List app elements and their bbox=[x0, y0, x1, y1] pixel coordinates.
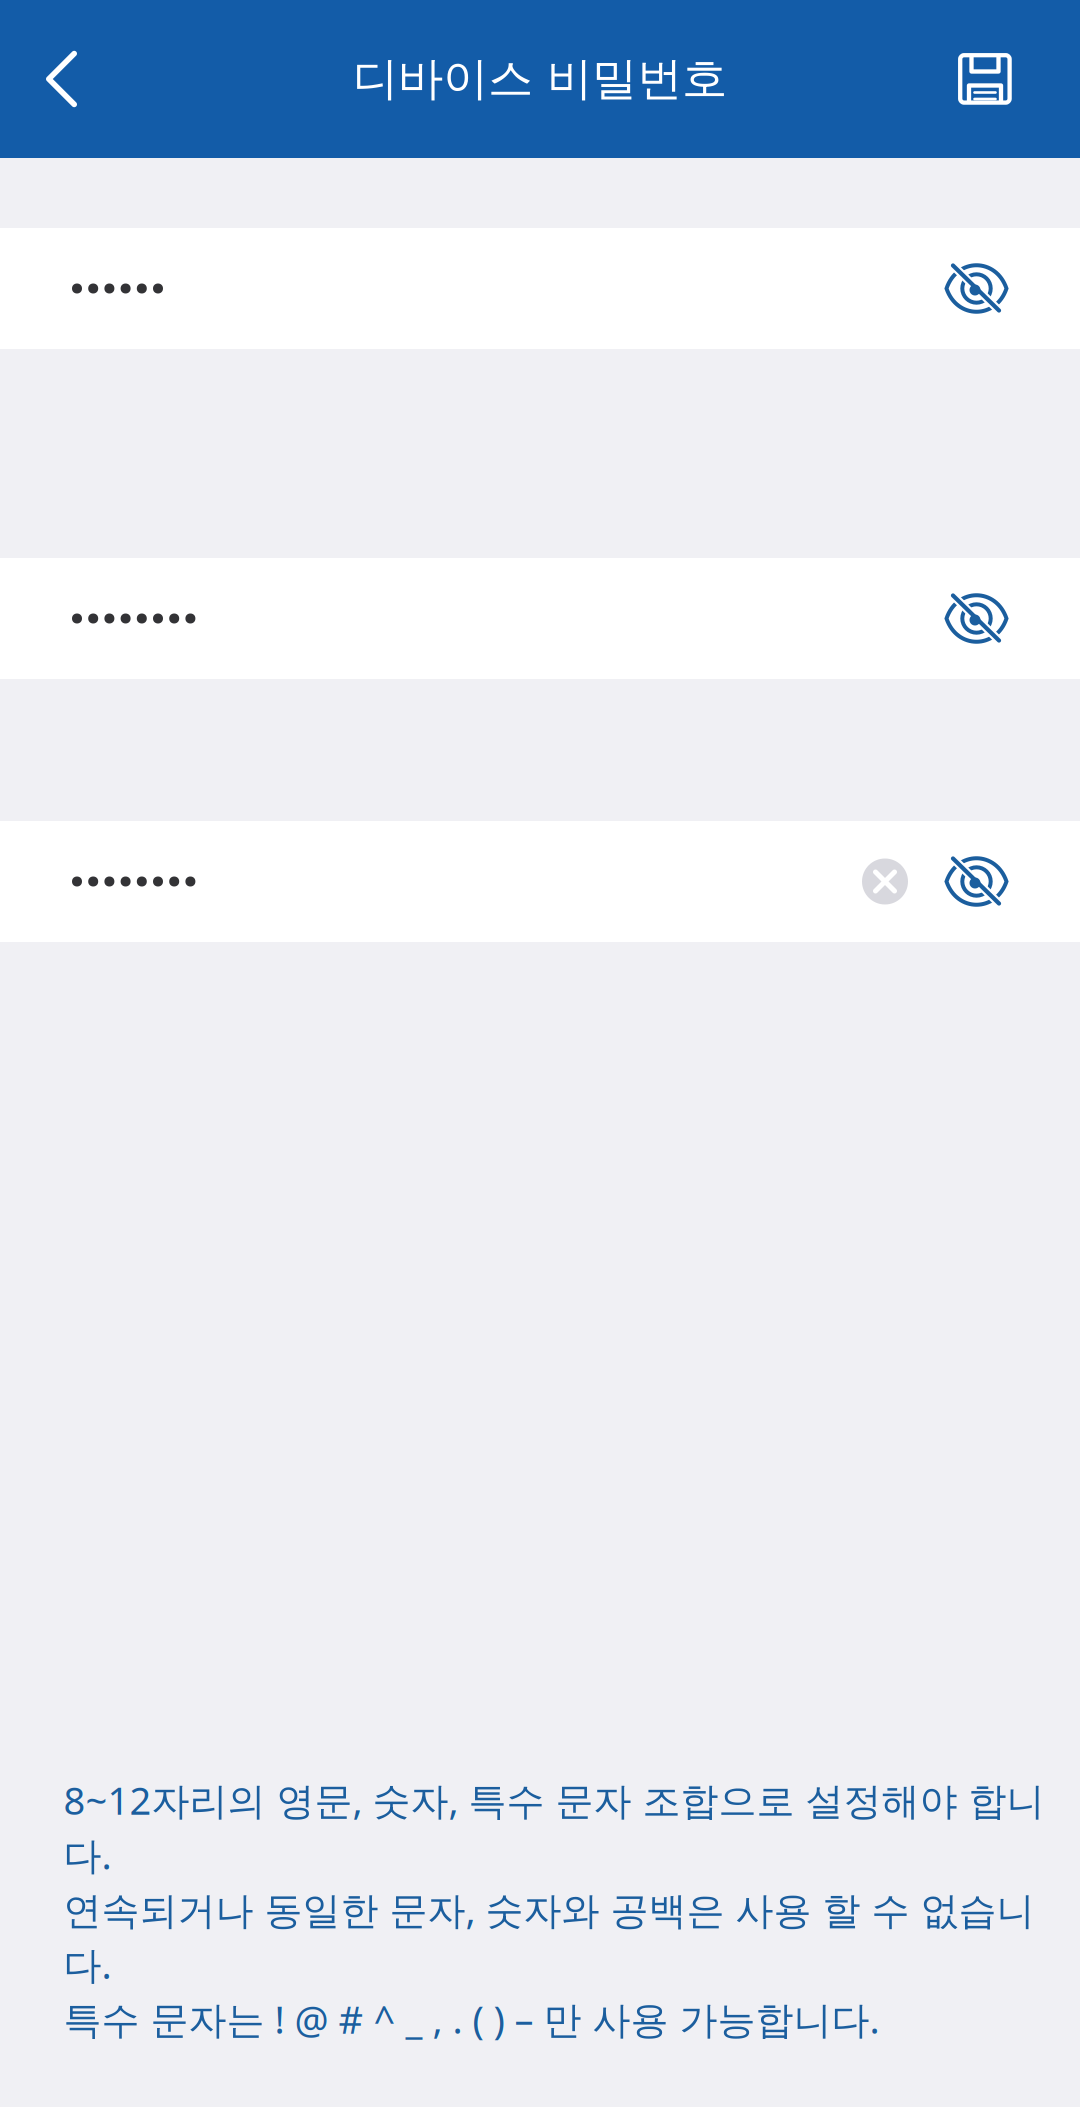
button[interactable]: 새 비밀번호 bbox=[0, 558, 1080, 679]
button[interactable]: Back bbox=[0, 27, 111, 131]
staticText: 다. bbox=[63, 1829, 111, 1881]
button[interactable]: Show password bbox=[924, 264, 1027, 313]
button[interactable]: 현재 비밀번호 bbox=[0, 228, 1080, 349]
staticText: 연속되거나 동일한 문자, 숫자와 공백은 사용 할 수 없습니 bbox=[63, 1884, 1034, 1935]
button[interactable]: Save bbox=[924, 29, 1080, 129]
button[interactable]: Clear text bbox=[846, 858, 924, 904]
staticText: 디바이스 비밀번호 bbox=[353, 50, 727, 107]
button[interactable]: Show password bbox=[924, 594, 1027, 643]
button[interactable]: Show password bbox=[924, 857, 1027, 906]
staticText: 8~12자리의 영문, 숫자, 특수 문자 조합으로 설정해야 합니 bbox=[63, 1774, 1044, 1826]
button[interactable]: 새 비밀번호 확인 bbox=[0, 821, 1080, 942]
staticText: 다. bbox=[63, 1938, 111, 1990]
staticText: 특수 문자는 ! @ # ^ _ , . ( ) – 만 사용 가능합니다. bbox=[63, 1993, 879, 2045]
